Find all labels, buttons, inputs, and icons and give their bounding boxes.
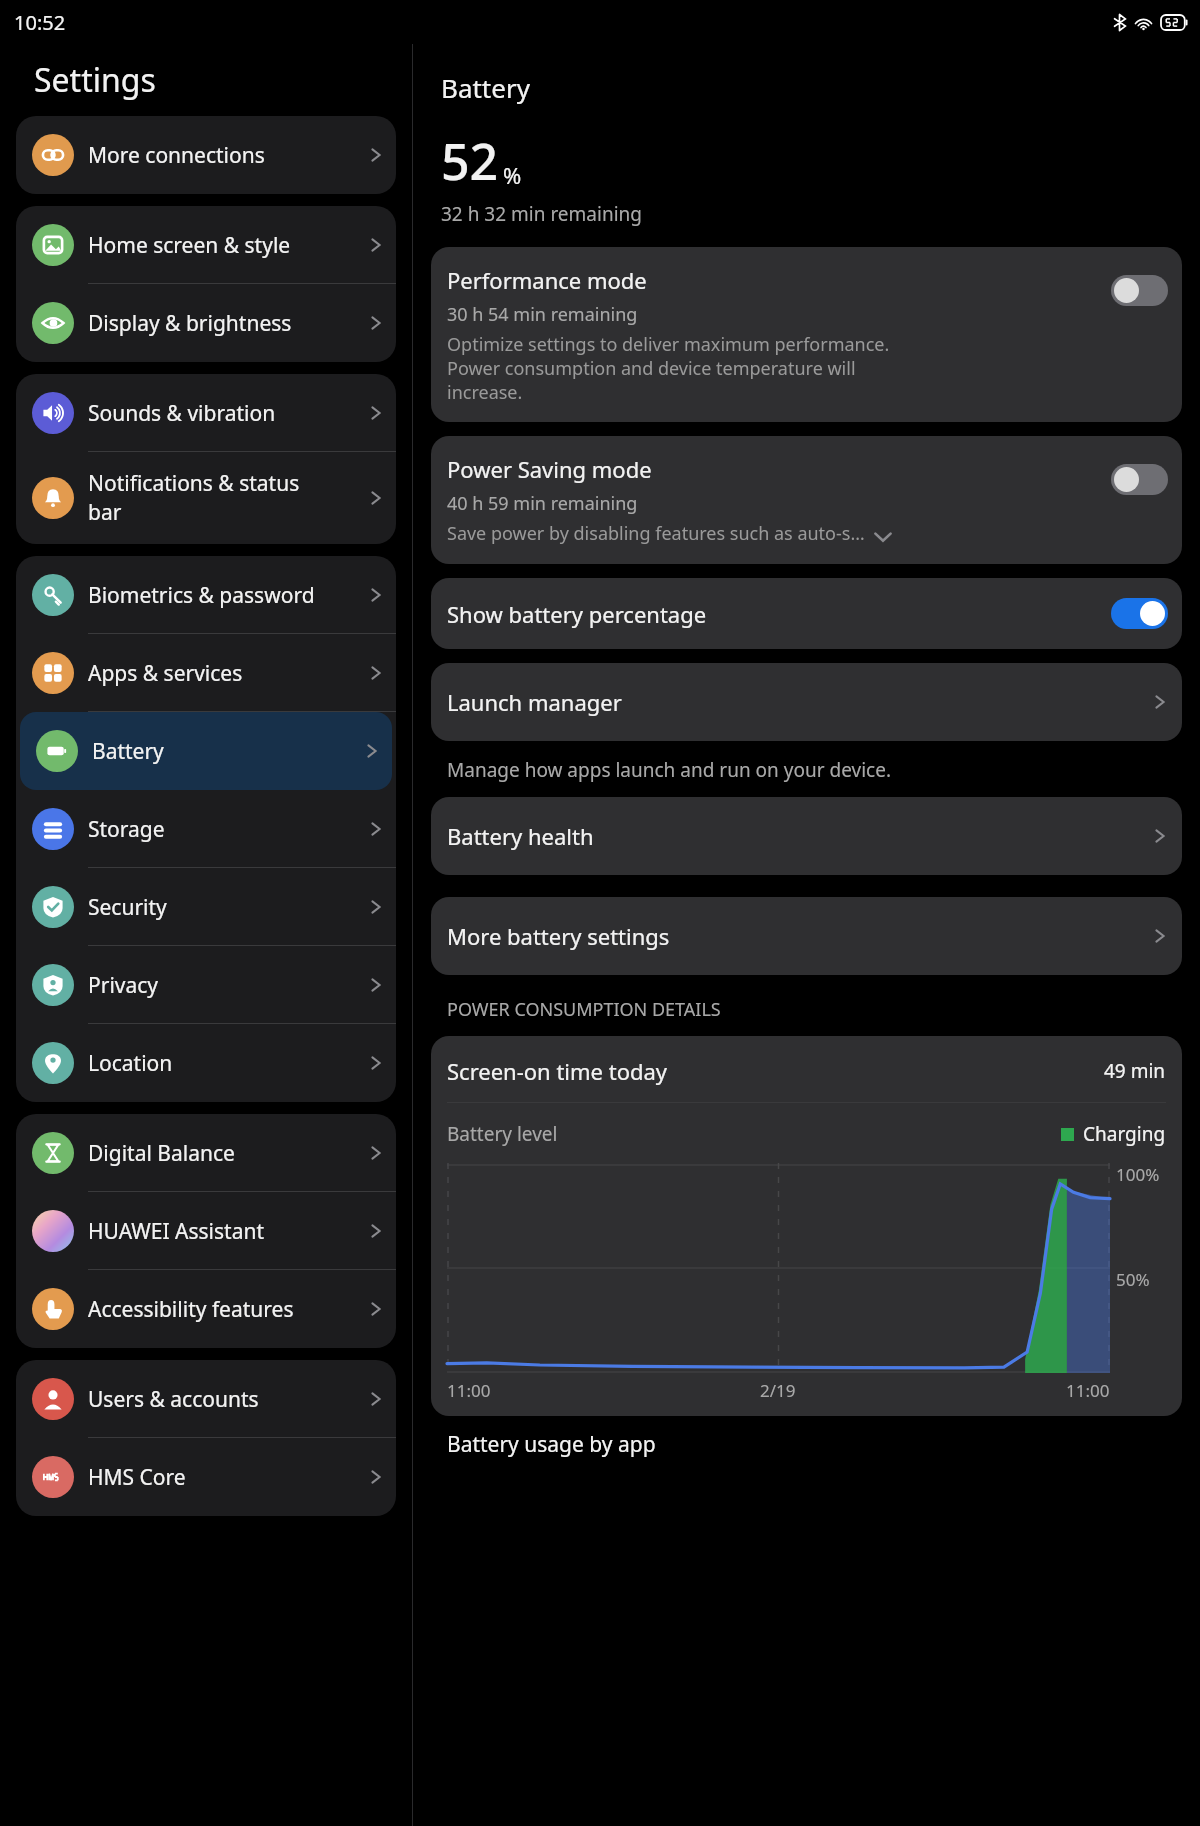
staticText: More connections <box>88 141 370 170</box>
button[interactable]: Show battery percentage <box>431 578 1182 649</box>
staticText: Biometrics & password <box>88 581 370 610</box>
staticText: 52 <box>441 127 499 195</box>
staticText: Battery usage by app <box>447 1430 656 1459</box>
button[interactable]: HUAWEI Assistant <box>16 1192 396 1270</box>
staticText: Security <box>88 893 370 922</box>
staticText: Sounds & vibration <box>88 399 370 428</box>
other: Expand <box>873 531 893 543</box>
staticText: HMS Core <box>88 1463 370 1492</box>
staticText: Optimize settings to deliver maximum per… <box>447 332 890 404</box>
button[interactable]: Apps & services <box>16 634 396 712</box>
staticText: 100% <box>1116 1163 1160 1186</box>
button[interactable]: Biometrics & password <box>16 556 396 634</box>
staticText: Battery <box>441 70 530 105</box>
staticText: Show battery percentage <box>447 599 1111 629</box>
staticText: Display & brightness <box>88 309 370 338</box>
staticText: Charging <box>1083 1121 1166 1147</box>
button[interactable]: Storage <box>16 790 396 868</box>
staticText: Save power by disabling features such as… <box>447 521 865 546</box>
button[interactable]: Toggle <box>1111 464 1168 495</box>
button[interactable]: Battery health <box>431 797 1182 875</box>
staticText: Power Saving mode <box>447 454 652 484</box>
button[interactable]: Security <box>16 868 396 946</box>
button[interactable]: Accessibility features <box>16 1270 396 1348</box>
button[interactable]: Launch manager <box>431 663 1182 741</box>
staticText: Manage how apps launch and run on your d… <box>447 757 891 783</box>
staticText: More battery settings <box>447 921 1154 951</box>
staticText: 11:00 <box>1066 1379 1110 1402</box>
staticText: % <box>503 160 522 190</box>
staticText: Screen-on time today <box>447 1056 1104 1086</box>
button[interactable]: Location <box>16 1024 396 1102</box>
staticText: 11:00 <box>447 1379 491 1402</box>
staticText: Battery level <box>447 1121 1061 1147</box>
button[interactable]: More battery settings <box>431 897 1182 975</box>
staticText: Home screen & style <box>88 231 370 260</box>
staticText: POWER CONSUMPTION DETAILS <box>447 997 721 1022</box>
staticText: Launch manager <box>447 687 1154 717</box>
staticText: Notifications & status bar <box>88 469 370 527</box>
button[interactable]: Notifications & status bar <box>16 452 396 544</box>
staticText: Users & accounts <box>88 1385 370 1414</box>
staticText: Privacy <box>88 971 370 1000</box>
staticText: HUAWEI Assistant <box>88 1217 370 1246</box>
staticText: Storage <box>88 815 370 844</box>
staticText: 49 min <box>1104 1058 1166 1084</box>
staticText: 50% <box>1116 1268 1150 1291</box>
button[interactable]: HMS Core <box>16 1438 396 1516</box>
staticText: Location <box>88 1049 370 1078</box>
button[interactable]: Toggle <box>1111 275 1168 306</box>
button[interactable]: Home screen & style <box>16 206 396 284</box>
staticText: Battery <box>92 737 366 766</box>
staticText: 2/19 <box>760 1379 796 1402</box>
button[interactable]: More connections <box>16 116 396 194</box>
button[interactable]: Battery <box>20 712 392 790</box>
button[interactable]: Screen-on time today <box>431 1036 1182 1416</box>
staticText: Battery health <box>447 821 1154 851</box>
staticText: 40 h 59 min remaining <box>447 491 638 516</box>
button[interactable]: Sounds & vibration <box>16 374 396 452</box>
staticText: Accessibility features <box>88 1295 370 1324</box>
button[interactable]: Digital Balance <box>16 1114 396 1192</box>
staticText: Settings <box>34 58 156 102</box>
staticText: Performance mode <box>447 265 647 295</box>
button[interactable]: Users & accounts <box>16 1360 396 1438</box>
staticText: Digital Balance <box>88 1139 370 1168</box>
staticText: Apps & services <box>88 659 370 688</box>
staticText: 10:52 <box>14 9 66 36</box>
button[interactable]: Display & brightness <box>16 284 396 362</box>
staticText: 32 h 32 min remaining <box>441 201 642 227</box>
button[interactable]: Power Saving mode <box>431 436 1182 564</box>
button[interactable]: Performance mode <box>431 247 1182 422</box>
staticText: 30 h 54 min remaining <box>447 302 638 327</box>
button[interactable]: Privacy <box>16 946 396 1024</box>
button[interactable]: Toggle <box>1111 598 1168 629</box>
